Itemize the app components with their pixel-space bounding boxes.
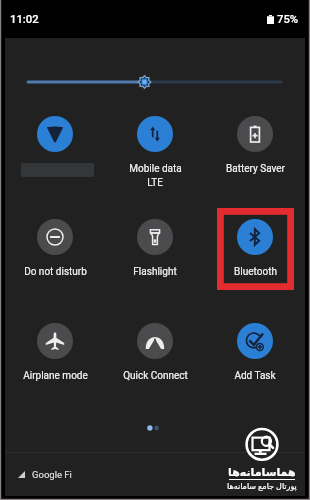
button[interactable]: Wi-Fi [5, 116, 105, 177]
staticText: 11:02 [10, 13, 39, 26]
staticText: هماسامانه‌ها [228, 466, 296, 479]
button[interactable]: Mobile data [105, 116, 205, 189]
staticText: Google Fi [32, 469, 72, 480]
staticText: Add Task [234, 370, 276, 382]
button[interactable]: Google Fi carrier [18, 469, 72, 480]
staticText: Airplane mode [23, 370, 88, 382]
staticText: پورتال جامع سامانه‌ها [227, 480, 297, 491]
button[interactable]: Flashlight [105, 219, 205, 278]
staticText: Mobile data [129, 163, 182, 175]
staticText: Flashlight [133, 266, 177, 278]
staticText: Bluetooth [234, 266, 277, 278]
staticText: Quick Connect [123, 370, 188, 382]
button[interactable]: Airplane mode [5, 323, 105, 382]
button[interactable]: Bluetooth [205, 219, 305, 278]
staticText: LTE [147, 177, 163, 189]
button[interactable]: Battery Saver [205, 116, 305, 175]
button[interactable]: Do not disturb [5, 219, 105, 278]
button[interactable]: Brightness [5, 70, 305, 94]
button[interactable]: Add Task [205, 323, 305, 382]
staticText: Battery Saver [226, 163, 285, 175]
button[interactable]: Quick Connect [105, 323, 205, 382]
staticText: Do not disturb [24, 266, 87, 278]
staticText: 75% [277, 13, 299, 26]
